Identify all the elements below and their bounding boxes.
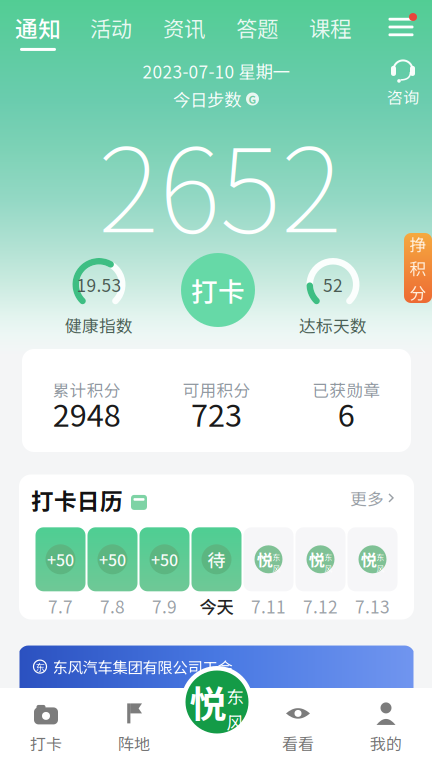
staticText: 52 [323,272,343,297]
staticText: +50 [99,548,126,571]
button[interactable]: 答题 [224,14,290,48]
staticText: 东 [35,660,44,673]
button[interactable]: 东风汽车集团有限公司工会 [18,645,414,740]
staticText: 今天 [199,593,233,618]
staticText: 今日步数 [173,86,241,112]
staticText: G [248,91,256,107]
staticText: 东风汽车集团有限公司工会 [52,655,232,678]
button[interactable]: 挣积分 [404,233,432,303]
staticText: 7.9 [152,593,177,618]
button[interactable]: +50 [35,527,85,613]
button[interactable]: 悦 [347,527,397,613]
staticText: 通知 [15,11,61,44]
staticText: 7.13 [355,593,390,618]
staticText: 课程 [309,12,351,43]
staticText: 阵地 [118,731,150,755]
staticText: +50 [151,548,178,571]
staticText: 东风 [324,551,332,574]
button[interactable]: 课程 [297,14,363,48]
staticText: 7.7 [48,593,73,618]
staticText: 可用积分 [182,377,250,401]
staticText: 打卡 [30,731,62,755]
staticText: 悦 [256,547,272,571]
staticText: 723 [191,391,242,436]
button[interactable]: 菜单 [384,13,417,41]
staticText: 东风 [226,683,244,734]
staticText: 累计积分 [53,377,121,401]
button[interactable]: +50 [139,527,189,613]
staticText: +50 [47,548,74,571]
button[interactable]: 悦东风 [181,666,253,738]
staticText: 活动 [90,12,132,43]
button[interactable]: 阵地 [96,702,172,754]
staticText: 悦 [189,675,226,729]
button[interactable]: 悦 [295,527,345,613]
staticText: 东风 [272,551,280,574]
button[interactable]: 待 [191,527,241,613]
button[interactable]: 资讯 [151,14,217,48]
button[interactable]: 打卡 [181,253,255,327]
staticText: 咨询 [387,85,419,108]
staticText: 悦 [308,547,324,571]
staticText: 答题 [236,12,278,43]
button[interactable]: 看看 [260,702,336,754]
staticText: 健康指数 [65,313,133,337]
staticText: 东风 [376,551,384,574]
staticText: 挣 [409,232,426,256]
staticText: 6 [338,391,355,436]
staticText: 7.12 [303,593,338,618]
staticText: 资讯 [163,12,205,43]
staticText: 打卡 [191,271,245,309]
button[interactable]: 悦 [243,527,293,613]
staticText: 7.8 [100,593,125,618]
staticText: 更多 [350,486,384,510]
button[interactable]: 活动 [78,14,144,48]
staticText: 达标天数 [299,313,367,337]
staticText: 已获勋章 [312,377,380,401]
staticText: 我的 [370,731,402,755]
staticText: 2948 [53,391,121,436]
button[interactable]: 打卡 [8,702,84,754]
button[interactable]: 通知 [5,14,71,48]
button[interactable]: 我的 [348,702,424,754]
staticText: 19.53 [76,272,121,297]
staticText: 打卡日历 [31,483,123,516]
button[interactable]: +50 [87,527,137,613]
button[interactable]: 更多 [350,490,394,510]
staticText: 积 [409,256,426,280]
staticText: 2652 [98,96,342,266]
staticText: 7.11 [251,593,286,618]
staticText: 看看 [282,731,314,755]
button[interactable]: 咨询 [380,58,426,106]
staticText: 待 [207,546,225,572]
staticText: 2023-07-10 星期一 [142,58,289,84]
staticText: 分 [409,280,426,304]
staticText: 悦 [360,547,376,571]
